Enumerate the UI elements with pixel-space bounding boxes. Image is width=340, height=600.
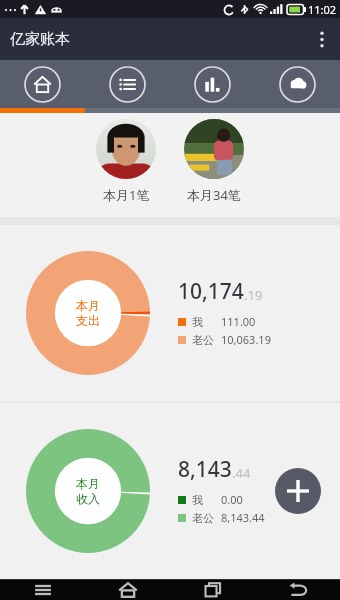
staticText: 111.00 bbox=[221, 314, 256, 329]
staticText: 0.00 bbox=[221, 492, 243, 507]
staticText: 老公 bbox=[192, 511, 214, 525]
button[interactable]: 本月1笔 bbox=[95, 119, 157, 204]
staticText: 本月34笔 bbox=[187, 186, 241, 204]
button[interactable]: Recents bbox=[170, 580, 255, 600]
button[interactable]: Back bbox=[255, 580, 340, 600]
button[interactable]: List bbox=[85, 60, 170, 108]
staticText: 支出 bbox=[76, 313, 100, 328]
button[interactable]: Chart bbox=[170, 60, 255, 108]
staticText: 8,143.44 bbox=[221, 510, 265, 525]
staticText: 本月 bbox=[76, 476, 100, 491]
button[interactable]: 本月34笔 bbox=[183, 119, 245, 204]
staticText: 10,063.19 bbox=[221, 332, 271, 347]
staticText: 本月 bbox=[76, 298, 100, 313]
button[interactable]: Home bbox=[0, 60, 85, 108]
button[interactable]: Menu bbox=[0, 580, 85, 600]
staticText: 收入 bbox=[76, 491, 100, 506]
staticText: 8,143 bbox=[178, 455, 232, 484]
staticText: .19 bbox=[244, 286, 263, 304]
button[interactable]: Cloud bbox=[255, 60, 340, 108]
staticText: 亿家账本 bbox=[10, 30, 70, 49]
button[interactable]: More options bbox=[304, 18, 340, 60]
staticText: 11:02 bbox=[308, 2, 337, 17]
button[interactable]: Home bbox=[85, 580, 170, 600]
button[interactable]: Add record bbox=[275, 468, 321, 514]
staticText: 老公 bbox=[192, 333, 214, 347]
staticText: .44 bbox=[232, 464, 251, 482]
staticText: 我 bbox=[192, 315, 203, 329]
staticText: 10,174 bbox=[178, 277, 244, 306]
staticText: 本月1笔 bbox=[103, 186, 150, 204]
staticText: 我 bbox=[192, 493, 203, 507]
